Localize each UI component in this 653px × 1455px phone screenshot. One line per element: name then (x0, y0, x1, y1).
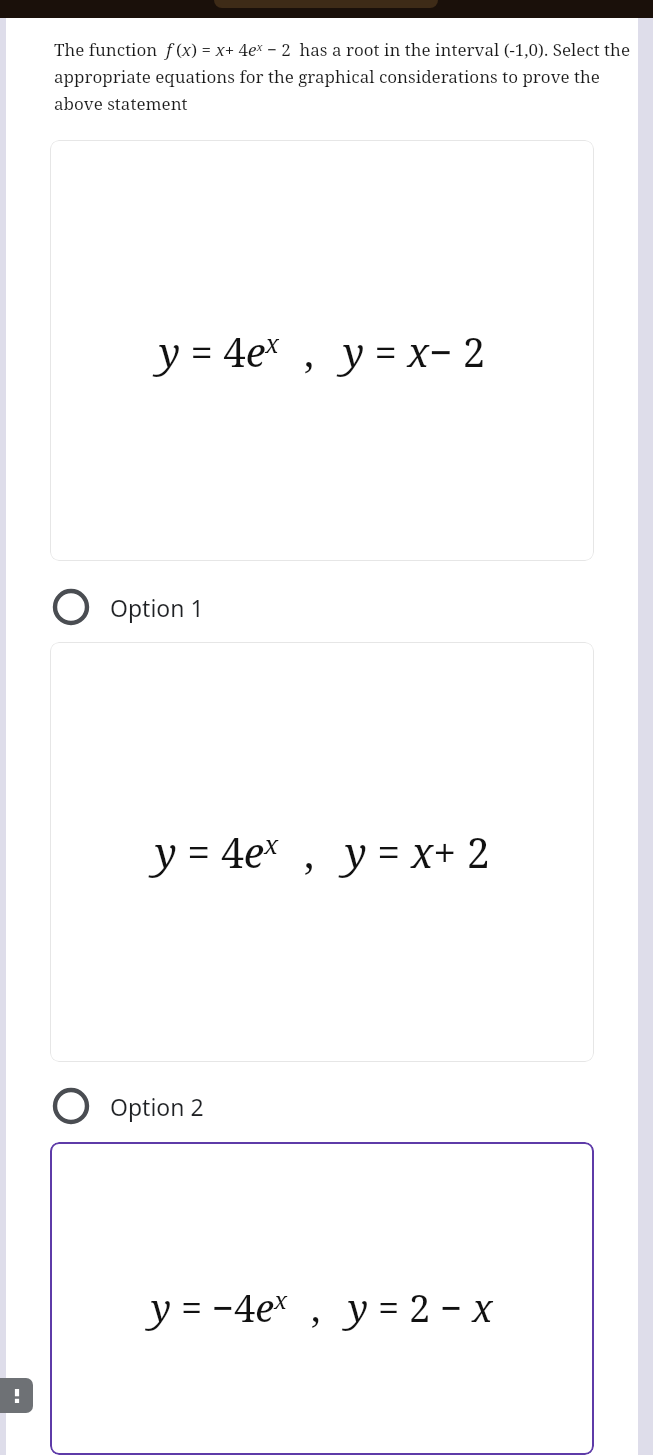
button[interactable]: y = 4ex (50, 642, 594, 1062)
button[interactable]: Option 1 (50, 579, 594, 635)
staticText: y = x− 2 (343, 324, 486, 378)
staticText: y = 4ex (159, 324, 280, 378)
staticText: y = 2 − x (348, 1281, 493, 1333)
staticText: , (304, 824, 315, 880)
button[interactable]: Report a problem (0, 1378, 33, 1413)
staticText: Option 1 (110, 592, 204, 623)
staticText: , (311, 1281, 321, 1333)
button[interactable]: y = 4ex (50, 140, 594, 561)
staticText: The function f (x) = x+ 4ex − 2 has a ro… (54, 38, 632, 115)
button[interactable]: Option 2 (50, 1078, 594, 1134)
staticText: , (304, 324, 314, 378)
staticText: y = −4ex (151, 1281, 288, 1333)
staticText: y = x+ 2 (345, 824, 490, 880)
staticText: Option 2 (110, 1091, 204, 1122)
button[interactable]: y = −4ex (50, 1142, 594, 1455)
staticText: y = 4ex (155, 824, 279, 880)
